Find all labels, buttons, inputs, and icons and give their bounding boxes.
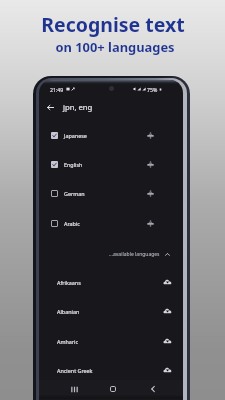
button[interactable]: Download [162,365,173,376]
staticText: Ancient Greek [57,367,93,374]
staticText: Afrikaans [57,279,81,286]
staticText: ...available languages [109,251,160,258]
button[interactable]: Afrikaans [39,268,183,297]
button[interactable]: ...available languages [39,245,183,263]
button[interactable]: Reorder [144,129,157,142]
staticText: Japanese [64,132,87,139]
button[interactable]: Back [39,98,183,116]
button[interactable]: Reorder [144,217,157,230]
button[interactable]: Reorder [144,158,157,171]
button[interactable]: English [39,150,183,179]
button[interactable]: Back [145,381,161,397]
staticText: Recognise text [41,11,185,38]
button[interactable]: Ancient Greek [39,356,183,385]
staticText: 21:49 [50,86,64,92]
staticText: Albanian [57,308,80,315]
button[interactable]: Download [162,306,173,317]
button[interactable]: German [39,179,183,208]
button[interactable]: Download [162,336,173,347]
staticText: Amharic [57,338,79,345]
button[interactable]: Back [39,98,63,116]
staticText: Arabic [64,220,80,227]
staticText: on 100+ languages [55,38,175,56]
button[interactable]: Reorder [144,187,157,200]
button[interactable]: Albanian [39,297,183,326]
button[interactable]: Recents [66,381,82,397]
staticText: German [64,190,85,197]
staticText: English [64,161,83,168]
staticText: jpn, eng [63,102,93,112]
button[interactable]: Arabic [39,209,183,238]
staticText: 75% [147,86,158,92]
button[interactable]: Japanese [39,121,183,150]
button[interactable]: Download [162,277,173,288]
button[interactable]: Home [105,381,121,397]
button[interactable]: Amharic [39,327,183,356]
